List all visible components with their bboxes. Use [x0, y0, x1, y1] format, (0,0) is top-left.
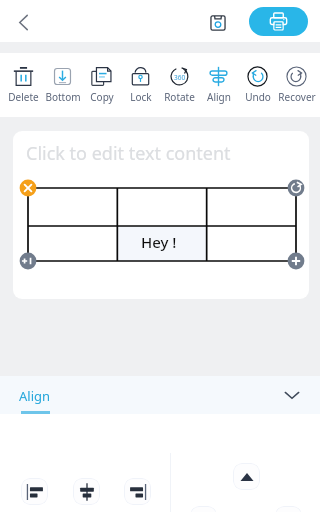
button[interactable]: Align left [21, 478, 48, 505]
button[interactable]: Align bottom [275, 506, 302, 512]
button[interactable]: Print [249, 7, 308, 36]
button[interactable]: Recover [277, 53, 316, 117]
button[interactable]: Align right [124, 478, 151, 505]
staticText: Copy [90, 90, 114, 104]
button[interactable]: 360 [160, 53, 199, 117]
staticText: Hey ! [141, 232, 177, 252]
button[interactable]: Lock [121, 53, 160, 117]
button[interactable]: Align middle [190, 506, 217, 512]
staticText: Bottom [45, 90, 81, 104]
button[interactable]: Delete [4, 53, 43, 117]
staticText: Delete [8, 90, 39, 104]
button[interactable]: Undo [238, 53, 277, 117]
button[interactable]: Align [10, 376, 60, 414]
staticText: Rotate [164, 90, 195, 104]
staticText: Recover [278, 90, 316, 104]
button[interactable]: Back [6, 4, 40, 38]
staticText: Align [207, 90, 231, 104]
button[interactable]: Align top [233, 463, 260, 490]
staticText: Align [19, 387, 51, 405]
staticText: Lock [130, 90, 152, 104]
staticText: Undo [245, 90, 271, 104]
button[interactable]: Collapse panel [279, 382, 305, 408]
button[interactable]: Align centre horizontally [73, 478, 100, 505]
staticText: 360 [174, 73, 186, 82]
staticText: Click to edit text content [26, 141, 231, 166]
button[interactable]: Copy [82, 53, 121, 117]
button[interactable]: Save [204, 9, 232, 37]
button[interactable]: Align [199, 53, 238, 117]
button[interactable]: Bottom [43, 53, 82, 117]
